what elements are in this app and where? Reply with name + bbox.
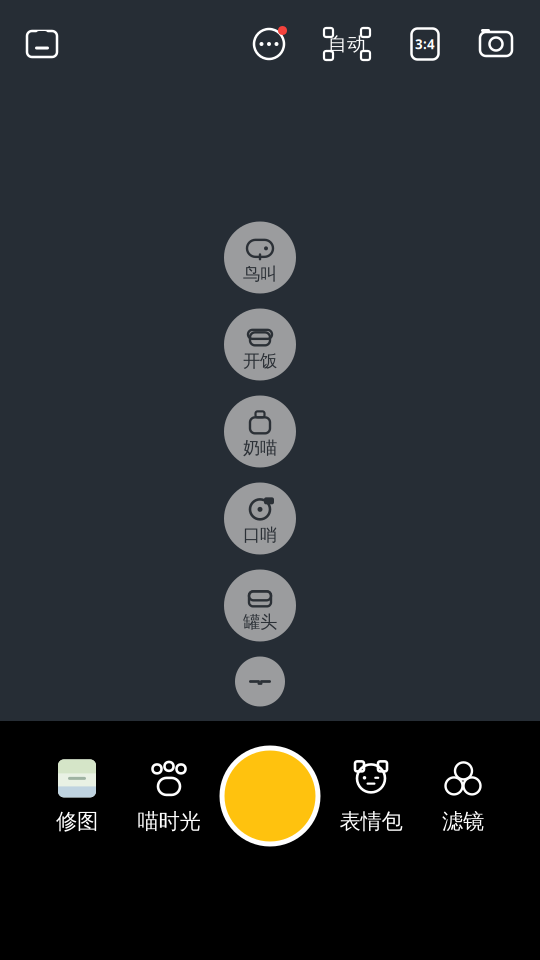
staticText: 罐头: [243, 611, 277, 633]
staticText: 开饭: [243, 350, 277, 372]
button[interactable]: More options: [246, 18, 292, 70]
staticText: 自动: [328, 32, 366, 55]
button[interactable]: 滤镜: [417, 746, 509, 846]
button[interactable]: 3:4: [402, 18, 448, 70]
staticText: 3:4: [415, 35, 435, 53]
button[interactable]: 奶喵: [224, 395, 296, 467]
button[interactable]: 罐头: [224, 569, 296, 641]
staticText: 修图: [56, 808, 98, 835]
button[interactable]: 鸟叫: [224, 221, 296, 293]
staticText: 表情包: [339, 808, 402, 835]
button[interactable]: 修图: [31, 746, 123, 846]
button[interactable]: 喵时光: [123, 746, 215, 846]
staticText: 奶喵: [243, 437, 277, 459]
button[interactable]: 自动: [320, 18, 374, 70]
staticText: 喵时光: [137, 808, 200, 835]
staticText: 鸟叫: [243, 263, 277, 285]
staticText: 滤镜: [442, 808, 484, 835]
button[interactable]: Home: [16, 18, 68, 70]
staticText: 口哨: [243, 524, 277, 546]
button[interactable]: Switch camera: [470, 18, 522, 70]
button[interactable]: 口哨: [224, 482, 296, 554]
button[interactable]: Shutter: [215, 741, 325, 851]
button[interactable]: 开饭: [224, 308, 296, 380]
button[interactable]: Collapse sounds: [235, 656, 285, 706]
button[interactable]: 表情包: [325, 746, 417, 846]
